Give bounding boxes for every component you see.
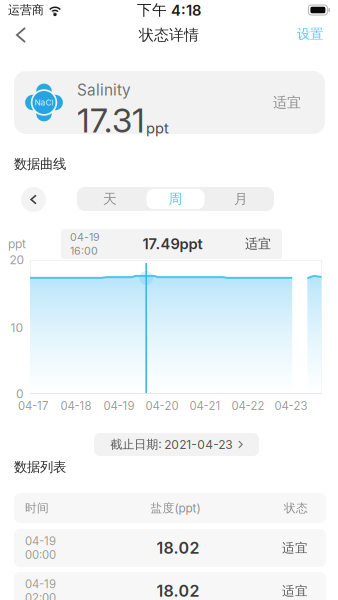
staticText: 设置 — [297, 26, 323, 42]
button[interactable]: 天 — [77, 187, 143, 211]
staticText: 04-22 — [231, 399, 264, 413]
staticText: 数据曲线 — [14, 156, 66, 172]
staticText: 04-19 — [25, 534, 56, 548]
staticText: 04-23 — [274, 399, 307, 413]
staticText: 时间 — [25, 501, 49, 515]
button[interactable]: 04-19 — [14, 529, 326, 567]
button[interactable]: 周 — [143, 187, 208, 211]
staticText: 0 — [16, 387, 24, 401]
button[interactable]: 上一页 — [21, 187, 46, 212]
staticText: ppt — [146, 119, 169, 137]
staticText: 18.02 — [156, 538, 199, 558]
staticText: 状态详情 — [139, 26, 199, 44]
staticText: NaCl — [34, 98, 53, 107]
staticText: 18.02 — [156, 581, 199, 600]
button[interactable]: 截止日期: 2021-04-23 — [94, 433, 259, 456]
staticText: 00:00 — [25, 548, 56, 562]
staticText: 下午 4:18 — [137, 1, 201, 19]
staticText: 04-21 — [189, 399, 220, 413]
staticText: 状态 — [284, 501, 308, 515]
staticText: 04-20 — [145, 399, 178, 413]
button[interactable]: 返回 — [6, 21, 36, 49]
staticText: 月 — [234, 190, 248, 208]
staticText: 04-19 — [103, 399, 134, 413]
staticText: 20 — [9, 253, 24, 267]
staticText: 04-18 — [60, 399, 91, 413]
staticText: 02:00 — [25, 591, 56, 600]
staticText: 截止日期: 2021-04-23 — [110, 437, 232, 452]
staticText: 16:00 — [70, 244, 98, 257]
staticText: 17.31 — [77, 100, 145, 140]
staticText: 04-19 — [25, 577, 56, 591]
staticText: Salinity — [77, 81, 131, 99]
staticText: 17.49ppt — [142, 235, 202, 253]
staticText: 10 — [10, 321, 23, 335]
staticText: ppt — [8, 237, 26, 251]
staticText: 适宜 — [282, 540, 308, 556]
staticText: 盐度(ppt) — [150, 501, 200, 515]
staticText: 数据列表 — [14, 459, 66, 475]
staticText: 04-17 — [18, 399, 48, 413]
staticText: 适宜 — [273, 94, 301, 111]
button[interactable]: 月 — [208, 187, 274, 211]
staticText: 天 — [103, 190, 117, 208]
button[interactable]: 04-19 — [14, 572, 326, 600]
staticText: 运营商 — [8, 2, 44, 17]
staticText: 适宜 — [245, 236, 271, 252]
staticText: 适宜 — [282, 583, 308, 599]
staticText: 周 — [168, 190, 182, 208]
staticText: 04-19 — [70, 231, 100, 243]
button[interactable]: 设置 — [288, 23, 332, 45]
